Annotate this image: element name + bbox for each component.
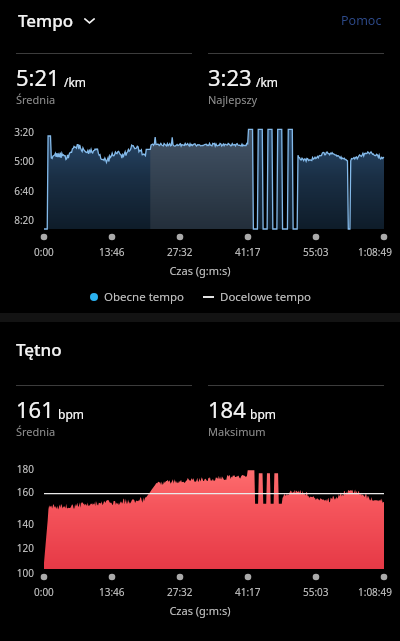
staticText: 160: [0, 485, 34, 499]
staticText: 0:00: [34, 585, 54, 599]
staticText: 55:03: [303, 585, 329, 599]
staticText: 180: [0, 462, 34, 476]
staticText: Czas (g:m:s): [0, 603, 400, 618]
staticText: Tempo: [18, 9, 74, 32]
staticText: 13:46: [99, 585, 125, 599]
staticText: /km: [64, 74, 87, 90]
staticText: Czas (g:m:s): [0, 263, 400, 278]
staticText: 41:17: [235, 245, 261, 259]
button[interactable]: Tempo: [16, 5, 98, 36]
staticText: Docelowe tempo: [220, 289, 311, 305]
staticText: Średnia: [16, 92, 56, 107]
staticText: /km: [256, 74, 279, 90]
staticText: Maksimum: [208, 424, 266, 439]
staticText: 5:00: [0, 154, 34, 168]
staticText: 5:21: [16, 62, 60, 92]
staticText: 41:17: [235, 585, 261, 599]
staticText: 1:08:49: [358, 585, 392, 599]
staticText: 55:03: [303, 245, 329, 259]
staticText: 161: [16, 394, 54, 424]
staticText: Średnia: [16, 424, 56, 439]
staticText: 100: [0, 566, 34, 580]
staticText: 27:32: [167, 585, 193, 599]
staticText: Najlepszy: [208, 92, 258, 107]
staticText: 184: [208, 394, 246, 424]
staticText: 13:46: [99, 245, 125, 259]
staticText: 140: [0, 517, 34, 531]
staticText: bpm: [250, 406, 276, 422]
button[interactable]: Pomoc: [335, 6, 388, 35]
other: Zmień metrykę: [83, 14, 96, 27]
staticText: 8:20: [0, 213, 34, 227]
staticText: 1:08:49: [358, 245, 392, 259]
staticText: 0:00: [34, 245, 54, 259]
staticText: Obecne tempo: [104, 289, 185, 305]
staticText: 6:40: [0, 184, 34, 198]
staticText: Tętno: [16, 338, 62, 361]
staticText: 3:20: [0, 125, 34, 139]
staticText: bpm: [58, 406, 84, 422]
staticText: 120: [0, 541, 34, 555]
staticText: 27:32: [167, 245, 193, 259]
staticText: Pomoc: [341, 12, 382, 29]
staticText: 3:23: [208, 62, 252, 92]
